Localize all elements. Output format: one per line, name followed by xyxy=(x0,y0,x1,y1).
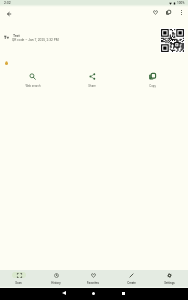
button[interactable]: Settings xyxy=(150,270,188,284)
button[interactable]: Scan xyxy=(0,270,37,284)
button[interactable]: Favorites xyxy=(74,270,112,284)
button[interactable]: History xyxy=(37,270,74,284)
staticText: Copy xyxy=(149,84,156,87)
button[interactable]: Copy xyxy=(122,71,182,89)
button[interactable]: Create xyxy=(112,270,150,284)
staticText: Web search xyxy=(25,84,41,87)
button[interactable]: Home xyxy=(92,292,95,295)
staticText: Create xyxy=(127,281,136,284)
staticText: 100% xyxy=(177,1,185,5)
button[interactable]: Back xyxy=(62,291,66,295)
staticText: Text xyxy=(13,34,20,38)
button[interactable]: Share xyxy=(62,71,122,89)
button[interactable]: Favorite xyxy=(149,6,162,19)
button[interactable]: Copy xyxy=(162,6,175,19)
staticText: Settings xyxy=(164,281,175,284)
button[interactable]: Back xyxy=(2,7,15,20)
staticText: Favorites xyxy=(87,281,99,284)
staticText: Share xyxy=(88,84,96,87)
staticText: History xyxy=(51,281,61,284)
staticText: 2:32 xyxy=(4,1,11,5)
staticText: Scan xyxy=(15,281,22,284)
staticText: QR code – Jan 7, 2025, 2:32 PM xyxy=(12,38,59,42)
button[interactable]: More options xyxy=(175,6,188,19)
button[interactable]: Web search xyxy=(3,71,62,89)
